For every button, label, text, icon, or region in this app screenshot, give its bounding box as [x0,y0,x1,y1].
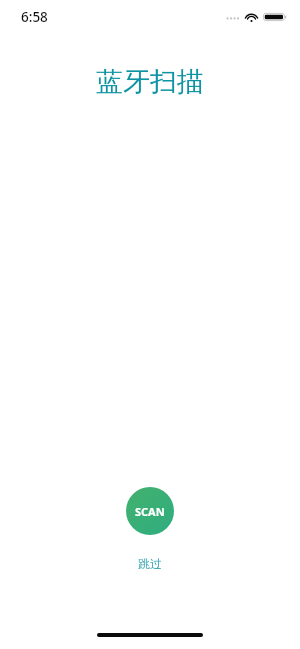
staticText: 6:58 [21,8,48,26]
button[interactable]: 跳过 [124,551,176,576]
staticText: 蓝牙扫描 [0,65,300,99]
button[interactable]: Scan for Bluetooth devices [126,487,174,535]
staticText: 跳过 [138,556,162,571]
staticText: SCAN [135,504,165,519]
